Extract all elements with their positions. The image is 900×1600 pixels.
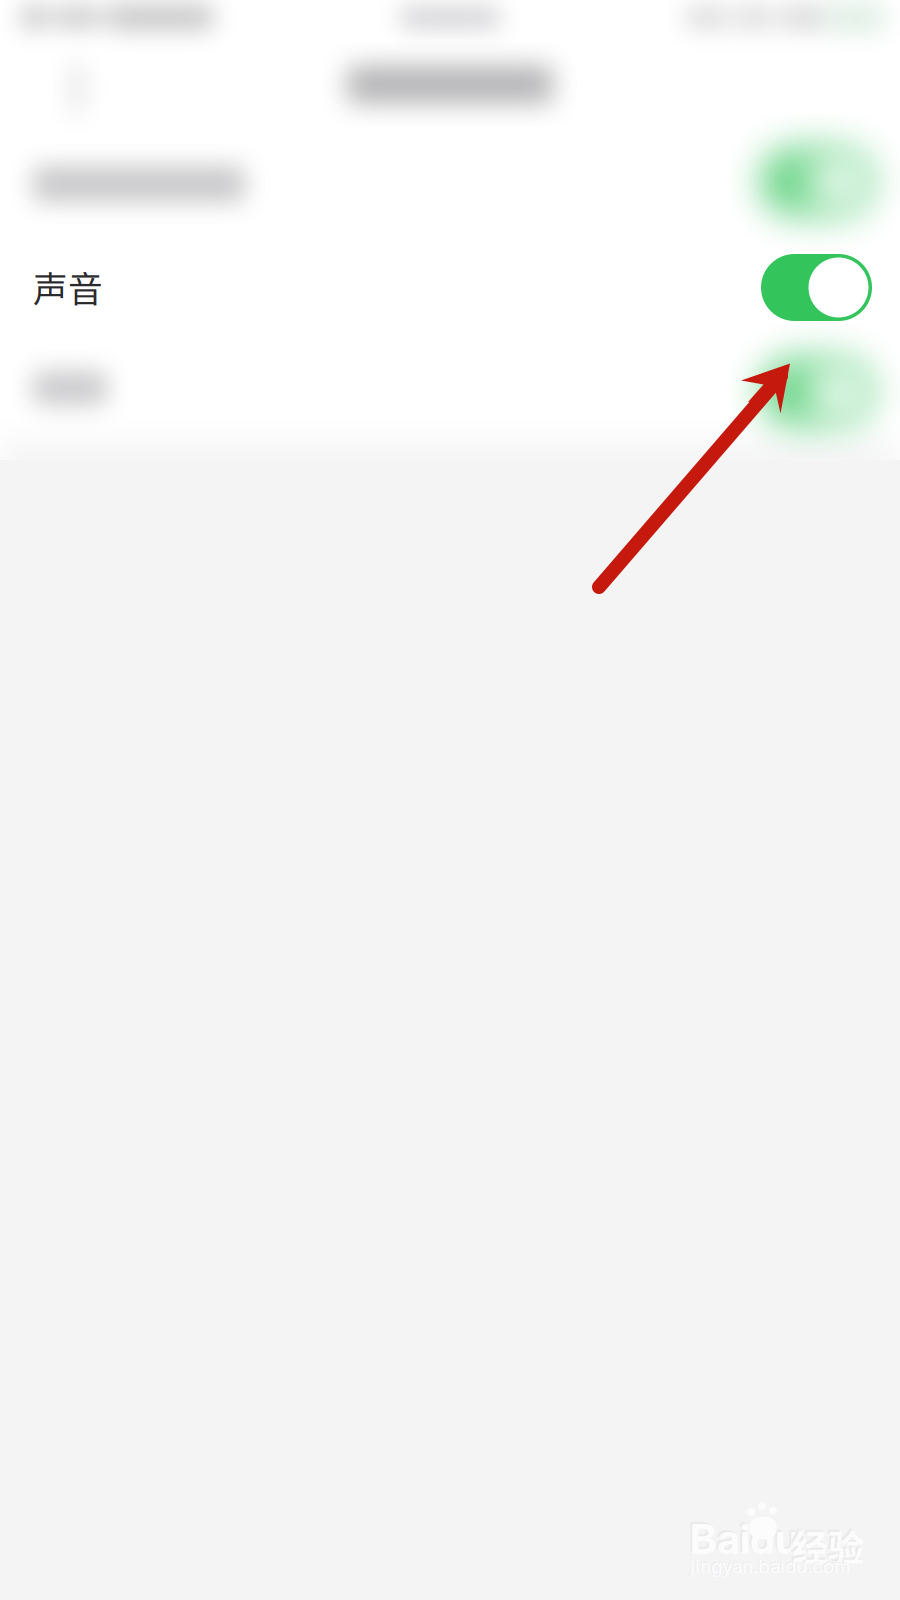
staticText: Baidu xyxy=(688,1512,797,1562)
staticText: Baidu xyxy=(690,1514,799,1564)
staticText: jingyan.baidu.com xyxy=(690,1555,850,1578)
button[interactable]: Back xyxy=(0,0,22,52)
button[interactable]: Toggle, on xyxy=(0,0,111,67)
staticText: 声音 xyxy=(33,262,103,312)
button[interactable]: Toggle, on xyxy=(0,0,111,67)
staticText: 经验 xyxy=(790,1518,862,1570)
button[interactable]: 声音, on xyxy=(0,0,111,67)
staticText: 经验 xyxy=(792,1520,864,1572)
staticText: jingyan.baidu.com xyxy=(689,1554,849,1577)
